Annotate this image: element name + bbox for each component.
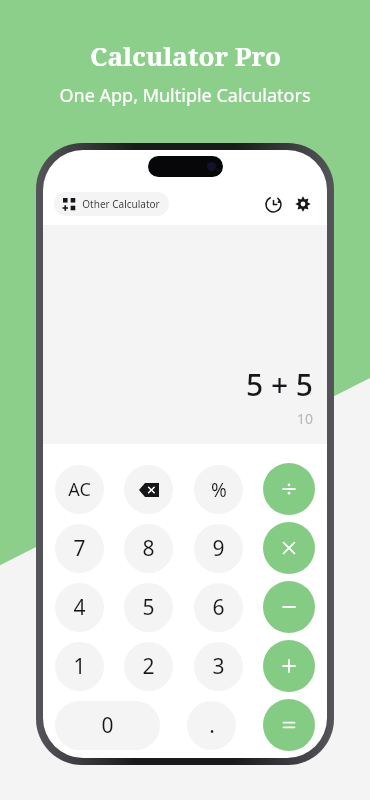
button[interactable]: Backspace	[124, 465, 173, 514]
staticText: 9	[212, 534, 225, 563]
button[interactable]: Add	[263, 640, 315, 692]
staticText: 2	[142, 652, 155, 681]
button[interactable]: 0	[55, 701, 160, 750]
staticText: 5	[142, 593, 155, 622]
staticText: 6	[212, 593, 225, 622]
button[interactable]: 1	[55, 642, 104, 691]
button[interactable]: Other Calculator	[54, 192, 169, 216]
button[interactable]: Divide	[263, 463, 315, 515]
button[interactable]: Equals	[263, 699, 315, 751]
button[interactable]: Multiply	[263, 522, 315, 574]
staticText: 4	[73, 593, 86, 622]
button[interactable]: AC	[55, 465, 104, 514]
staticText: 8	[142, 534, 155, 563]
button[interactable]: 8	[124, 524, 173, 573]
staticText: %	[211, 477, 227, 503]
staticText: .	[209, 711, 215, 740]
button[interactable]: 5	[124, 583, 173, 632]
button[interactable]: 7	[55, 524, 104, 573]
button[interactable]: 3	[194, 642, 243, 691]
staticText: 7	[73, 534, 86, 563]
button[interactable]: %	[194, 465, 243, 514]
staticText: One App, Multiple Calculators	[59, 83, 311, 108]
staticText: AC	[68, 477, 91, 502]
button[interactable]: 9	[194, 524, 243, 573]
staticText: 0	[101, 711, 114, 740]
button[interactable]: .	[187, 701, 236, 750]
button[interactable]: Subtract	[263, 581, 315, 633]
staticText: 5 + 5	[245, 364, 313, 405]
staticText: 10	[296, 409, 313, 428]
button[interactable]: 2	[124, 642, 173, 691]
staticText: 1	[73, 652, 86, 681]
button[interactable]: 4	[55, 583, 104, 632]
staticText: 3	[212, 652, 225, 681]
staticText: Other Calculator	[82, 197, 160, 211]
button[interactable]: History	[260, 191, 286, 217]
button[interactable]: Settings	[290, 191, 316, 217]
staticText: Calculator Pro	[90, 38, 281, 73]
button[interactable]: 6	[194, 583, 243, 632]
